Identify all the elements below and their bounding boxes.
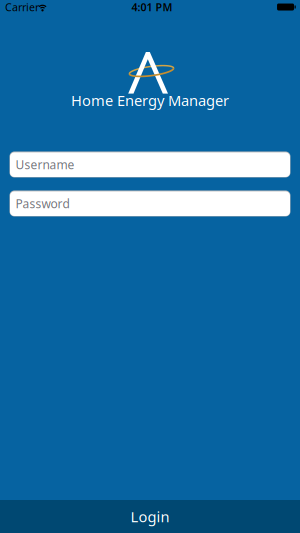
staticText: Password	[15, 195, 69, 211]
staticText: Carrier	[5, 0, 39, 14]
staticText: Username	[15, 156, 74, 172]
button[interactable]: Login	[0, 500, 300, 533]
staticText: Login	[130, 507, 169, 526]
button[interactable]: Username	[9, 151, 290, 177]
staticText: Home Energy Manager	[71, 90, 229, 110]
staticText: 4:01 PM	[131, 0, 172, 14]
button[interactable]: Password	[9, 190, 290, 216]
